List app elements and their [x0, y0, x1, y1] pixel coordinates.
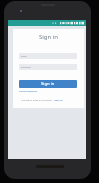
staticText: You didn't have an account?: [21, 98, 54, 101]
staticText: Email: [21, 55, 27, 58]
button[interactable]: Password: [19, 64, 77, 70]
staticText: Password: [21, 66, 31, 69]
staticText: Sign in: [41, 81, 55, 87]
button[interactable]: Email: [19, 53, 77, 59]
button[interactable]: Forgot password?: [19, 90, 38, 93]
button[interactable]: Sign in: [19, 80, 77, 88]
staticText: Sign in: [13, 33, 84, 41]
button[interactable]: Sign up: [54, 98, 63, 101]
